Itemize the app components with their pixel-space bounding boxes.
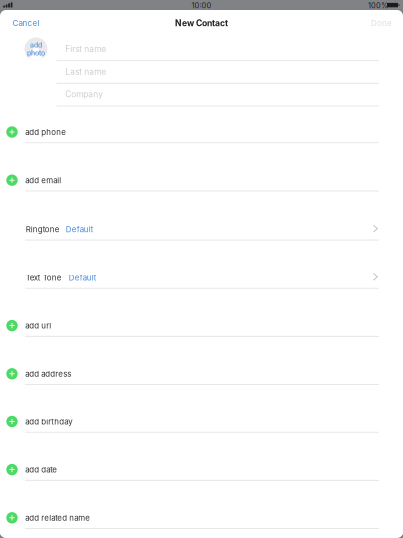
button[interactable]: Ringtone — [0, 213, 403, 247]
staticText: add phone — [25, 127, 66, 137]
button[interactable]: add url — [0, 309, 403, 343]
staticText: Done — [371, 18, 392, 28]
staticText: add related name — [25, 513, 90, 523]
staticText: Default — [69, 273, 97, 282]
staticText: add email — [25, 176, 61, 185]
staticText: First name — [65, 44, 106, 54]
button[interactable]: Cancel — [12, 15, 48, 31]
staticText: add url — [25, 321, 51, 330]
staticText: Text Tone — [26, 273, 62, 282]
button[interactable]: Done — [362, 15, 392, 31]
button[interactable]: Text Tone — [0, 261, 403, 295]
staticText: Cancel — [12, 18, 39, 28]
button[interactable]: add date — [0, 453, 403, 487]
staticText: 10:00 — [191, 1, 211, 10]
button[interactable]: add related name — [0, 502, 403, 536]
button[interactable]: add email — [0, 164, 403, 198]
staticText: Company — [65, 89, 103, 99]
staticText: Default — [66, 225, 94, 234]
staticText: Ringtone — [26, 225, 60, 234]
button[interactable]: add birthday — [0, 405, 403, 439]
staticText: add birthday — [25, 417, 72, 426]
staticText: add — [30, 41, 42, 49]
staticText: Last name — [65, 67, 106, 77]
button[interactable]: add — [24, 37, 47, 60]
staticText: New Contact — [175, 18, 228, 28]
staticText: 100% — [368, 1, 388, 10]
staticText: add date — [25, 465, 57, 474]
staticText: photo — [27, 49, 45, 57]
button[interactable]: add address — [0, 358, 403, 392]
button[interactable]: add phone — [0, 116, 403, 150]
staticText: add address — [25, 369, 71, 379]
